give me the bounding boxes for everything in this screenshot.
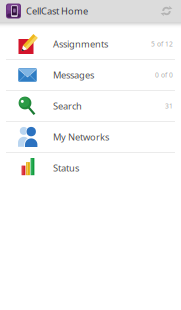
button[interactable]: Refresh (160, 4, 181, 17)
staticText: My Networks (53, 131, 109, 143)
button[interactable]: My Networks (0, 122, 181, 152)
staticText: 5 of 12 (151, 40, 173, 48)
staticText: 0 of 0 (155, 71, 173, 79)
staticText: Status (53, 162, 79, 174)
staticText: Search (53, 100, 82, 112)
button[interactable]: Messages (0, 60, 181, 90)
staticText: 31 (165, 102, 173, 110)
button[interactable]: Assignments (0, 29, 181, 59)
staticText: Messages (53, 69, 94, 81)
staticText: Assignments (53, 38, 108, 50)
staticText: CellCast Home (26, 5, 88, 17)
button[interactable]: Search (0, 91, 181, 121)
button[interactable]: Status (0, 153, 181, 183)
